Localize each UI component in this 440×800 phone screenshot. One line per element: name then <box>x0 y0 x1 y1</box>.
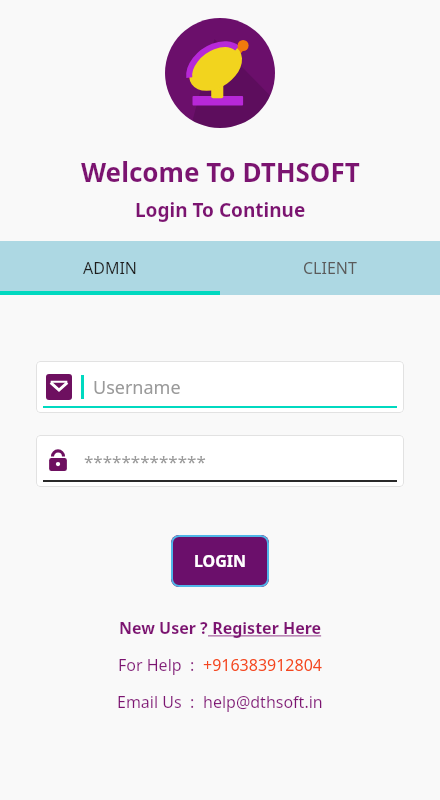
staticText: Login To Continue <box>135 197 306 223</box>
other: Password <box>46 449 70 473</box>
button[interactable]: +916383912804 <box>203 654 322 676</box>
staticText: Email Us : <box>117 691 203 713</box>
button[interactable]: ADMIN <box>0 241 220 295</box>
staticText: New User ? <box>119 617 208 639</box>
button[interactable]: LOGIN <box>171 535 269 587</box>
button[interactable]: CLIENT <box>220 241 440 295</box>
staticText: ************* <box>84 450 206 473</box>
staticText: Welcome To DTHSOFT <box>81 154 360 189</box>
other: DTHSOFT logo <box>165 18 275 128</box>
staticText: LOGIN <box>194 550 247 572</box>
staticText: CLIENT <box>303 257 357 279</box>
button[interactable]: help@dthsoft.in <box>203 691 323 713</box>
button[interactable]: Username <box>36 361 404 413</box>
button[interactable]: Register Here <box>208 617 322 639</box>
staticText: ADMIN <box>83 257 138 279</box>
staticText: For Help : <box>118 654 203 676</box>
staticText: help@dthsoft.in <box>203 691 323 713</box>
staticText: Username <box>93 375 181 400</box>
staticText: +916383912804 <box>203 654 322 676</box>
button[interactable]: Password <box>36 435 404 487</box>
other: Username <box>46 374 72 400</box>
staticText: Register Here <box>208 617 322 639</box>
